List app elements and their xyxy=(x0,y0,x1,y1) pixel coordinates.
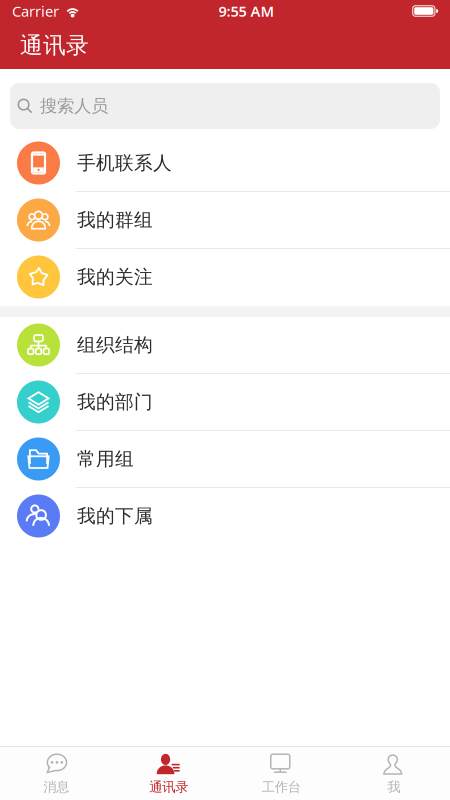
button[interactable]: 我 xyxy=(337,747,450,800)
staticText: 通讯录 xyxy=(149,779,188,795)
button[interactable]: 通讯录 xyxy=(112,747,225,800)
staticText: 我的下属 xyxy=(77,504,153,527)
staticText: Carrier xyxy=(12,1,59,21)
staticText: 工作台 xyxy=(262,779,301,795)
staticText: 手机联系人 xyxy=(77,151,172,174)
staticText: 常用组 xyxy=(77,447,134,470)
staticText: 搜索人员 xyxy=(40,95,108,117)
button[interactable]: 组织结构 xyxy=(0,317,450,374)
staticText: 9:55 AM xyxy=(218,1,274,21)
button[interactable]: 消息 xyxy=(0,747,112,800)
staticText: 我的群组 xyxy=(77,208,153,231)
button[interactable]: 我的关注 xyxy=(0,249,450,306)
staticText: 我的部门 xyxy=(77,390,153,413)
staticText: 我的关注 xyxy=(77,265,153,288)
button[interactable]: 工作台 xyxy=(225,747,337,800)
button[interactable]: 我的下属 xyxy=(0,488,450,545)
button[interactable]: 常用组 xyxy=(0,431,450,488)
button[interactable]: 我的部门 xyxy=(0,374,450,431)
staticText: 消息 xyxy=(43,779,69,795)
button[interactable]: 我的群组 xyxy=(0,192,450,249)
button[interactable]: 手机联系人 xyxy=(0,135,450,192)
staticText: 组织结构 xyxy=(77,333,153,356)
staticText: 通讯录 xyxy=(20,32,89,59)
staticText: 我 xyxy=(387,779,400,795)
